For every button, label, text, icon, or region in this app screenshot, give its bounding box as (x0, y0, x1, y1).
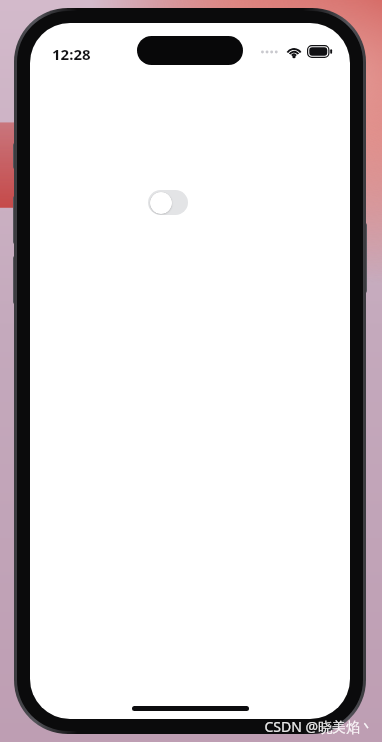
staticText: CSDN @晓美焰丶 (264, 717, 374, 736)
staticText: 12:28 (52, 44, 91, 64)
button[interactable]: Toggle switch, off (148, 190, 188, 215)
